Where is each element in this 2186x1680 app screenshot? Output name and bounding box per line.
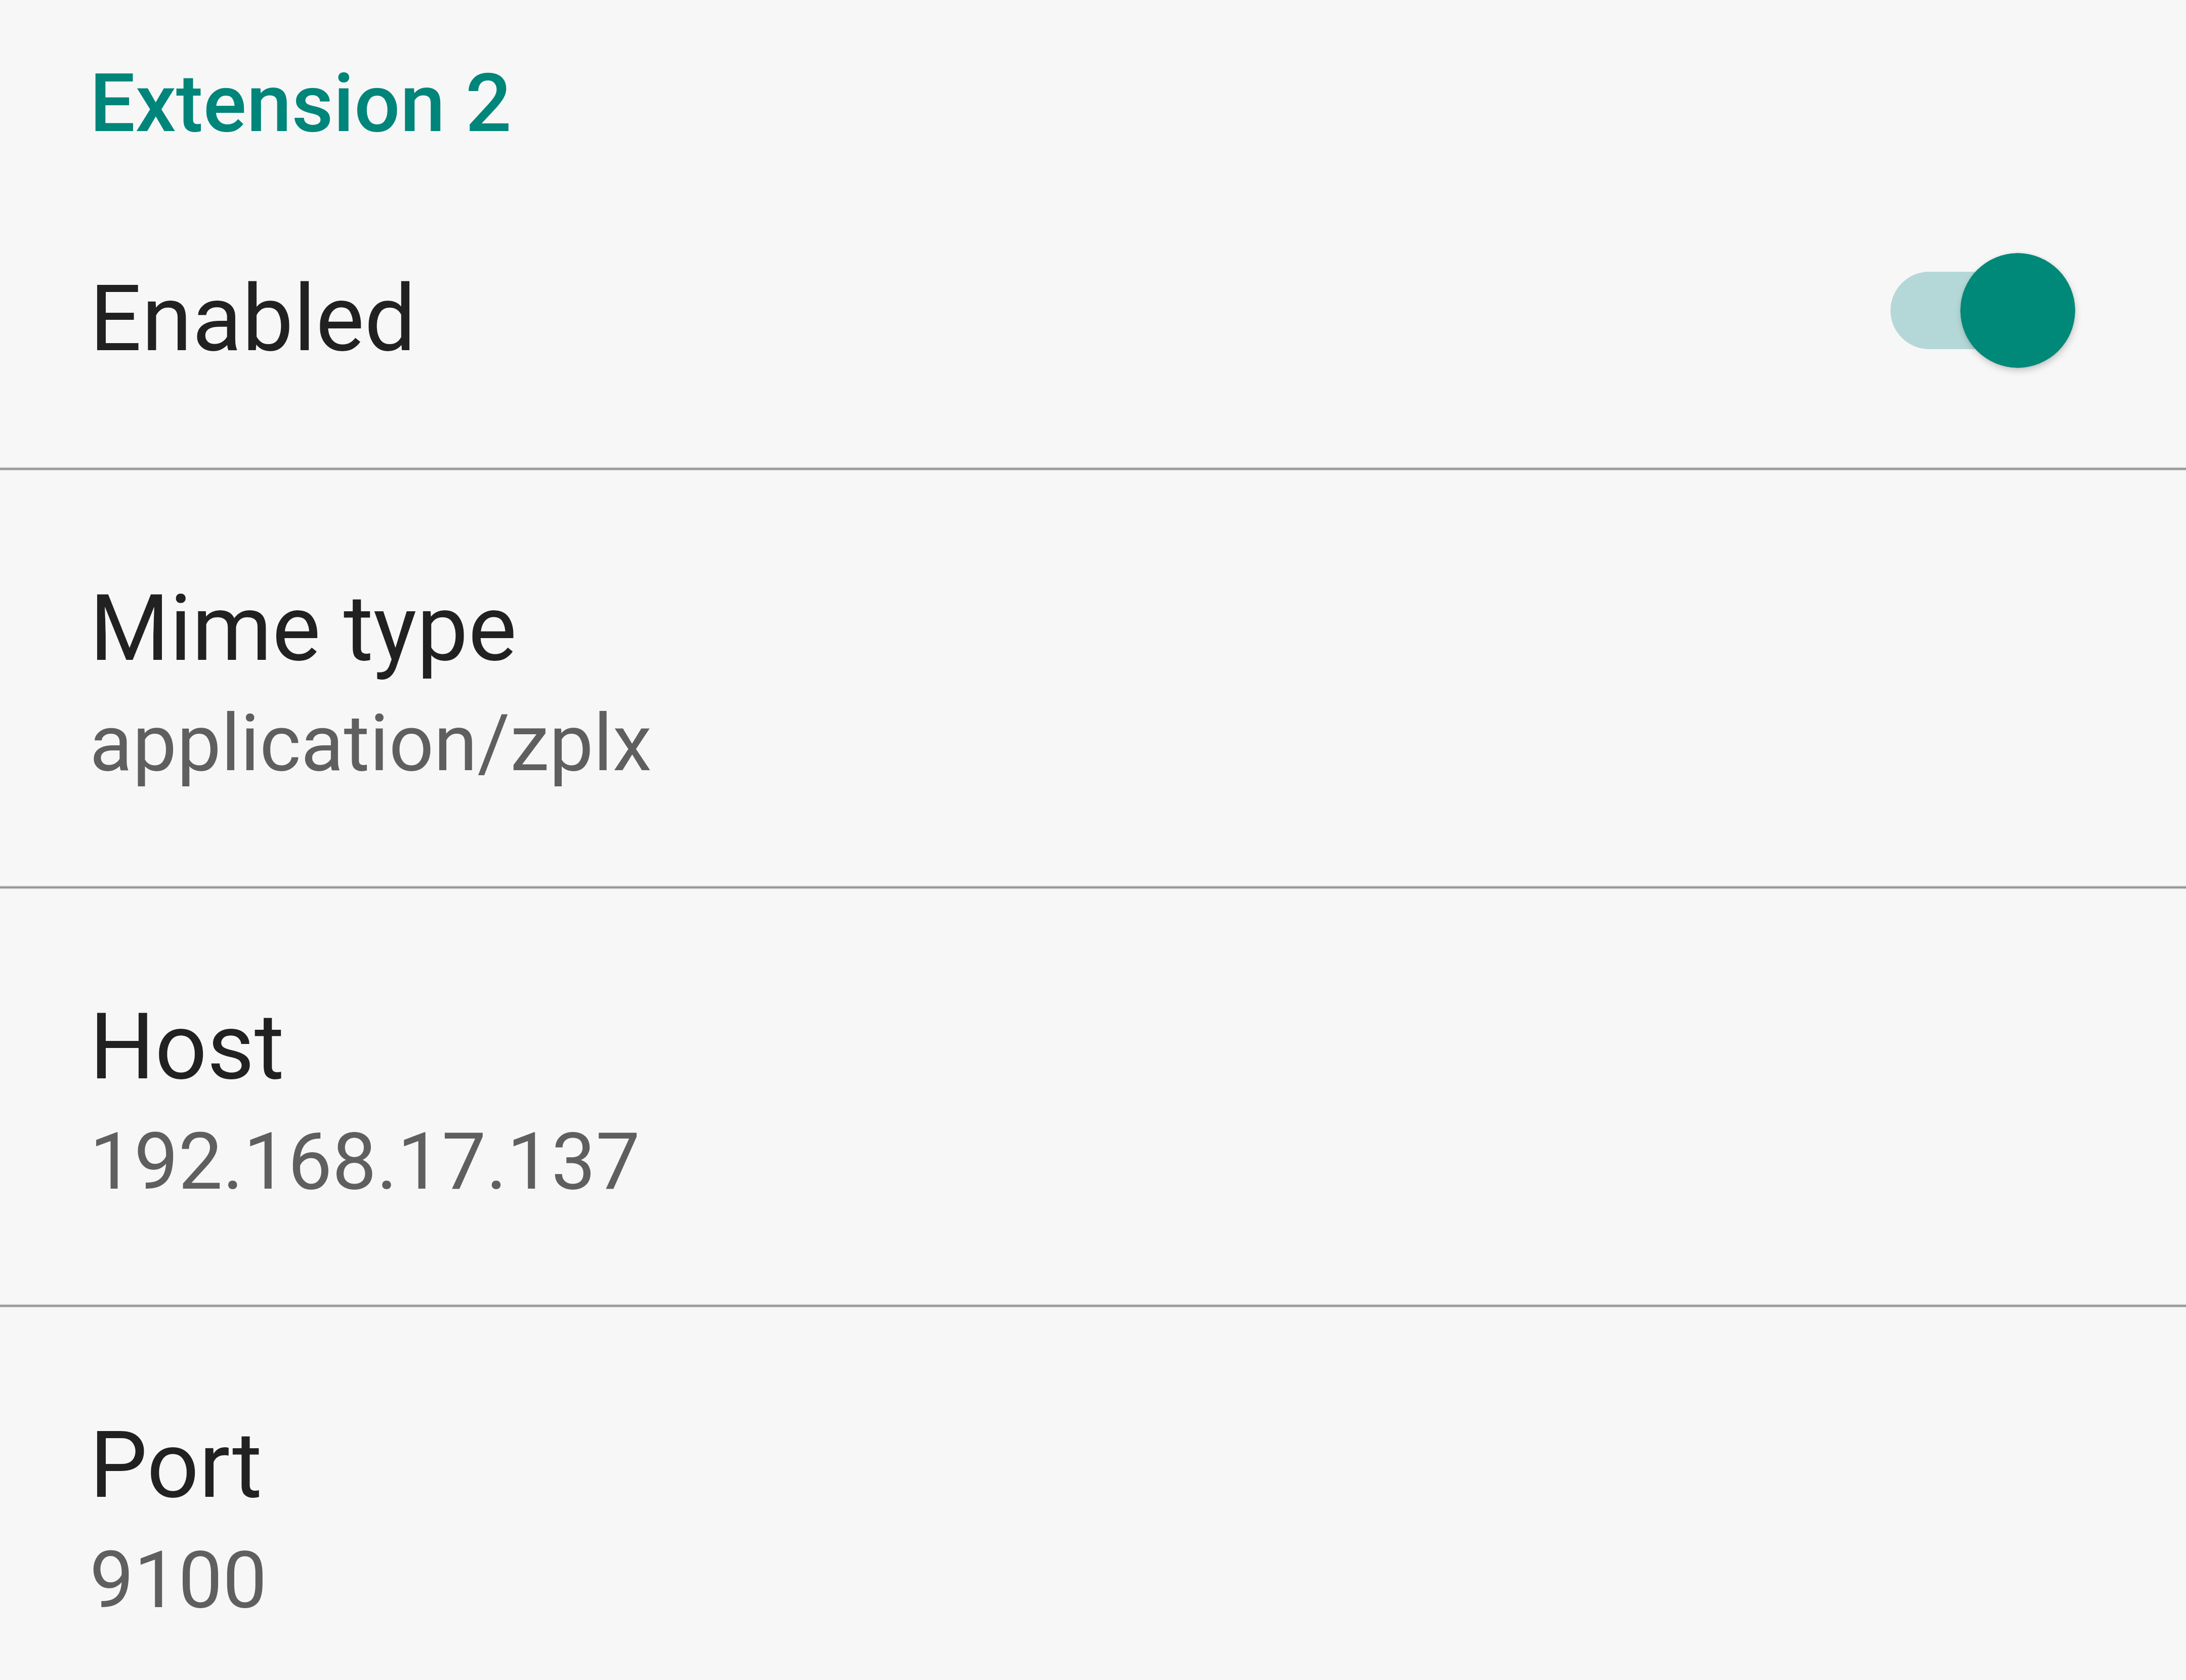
button[interactable]: Enabled, on bbox=[0, 202, 2186, 469]
button[interactable] bbox=[0, 1308, 2186, 1680]
staticText: Extension 2 bbox=[90, 56, 512, 151]
button[interactable] bbox=[0, 471, 2186, 885]
staticText: Mime type bbox=[90, 575, 517, 682]
staticText: Host bbox=[90, 993, 284, 1101]
staticText: Port bbox=[90, 1412, 263, 1519]
staticText: Enabled bbox=[90, 265, 416, 372]
staticText: application/zplx bbox=[90, 697, 652, 789]
staticText: 192.168.17.137 bbox=[90, 1115, 640, 1208]
staticText: 9100 bbox=[90, 1534, 267, 1626]
button[interactable] bbox=[0, 889, 2186, 1304]
